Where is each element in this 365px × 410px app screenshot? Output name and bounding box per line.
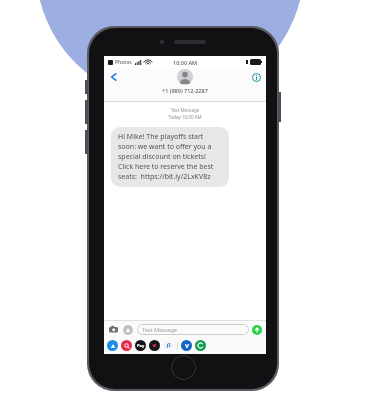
staticText: 10:00 AM	[173, 59, 198, 66]
button[interactable]: Send	[252, 325, 262, 335]
button[interactable]	[177, 69, 193, 85]
button[interactable]: Hi Mike! The playoffs start soon: we wan…	[111, 127, 229, 187]
button[interactable]: Health	[149, 340, 160, 351]
staticText: Text Message	[104, 107, 266, 113]
staticText: V	[185, 342, 189, 350]
button[interactable]: Home	[171, 355, 196, 380]
staticText: +1 (989) 712-2287	[162, 87, 208, 94]
staticText: Text Message	[142, 326, 177, 333]
button[interactable]: App Store	[107, 340, 118, 351]
button[interactable]: Music	[163, 340, 174, 351]
button[interactable]: More	[195, 340, 206, 351]
button[interactable]: Text Message	[137, 324, 249, 335]
button[interactable]: Info	[249, 70, 263, 84]
button[interactable]: Back	[107, 70, 121, 84]
button[interactable]: Apple Pay	[135, 340, 146, 351]
button[interactable]: Venmo	[181, 340, 192, 351]
button[interactable]: Search	[121, 340, 132, 351]
staticText: Pay	[137, 343, 145, 348]
staticText: Photos	[115, 59, 132, 66]
staticText: Hi Mike! The playoffs start soon: we wan…	[118, 132, 222, 182]
button[interactable]: Camera	[108, 324, 119, 335]
button[interactable]: Apps	[123, 325, 133, 335]
staticText: Today 10:00 AM	[104, 114, 266, 120]
